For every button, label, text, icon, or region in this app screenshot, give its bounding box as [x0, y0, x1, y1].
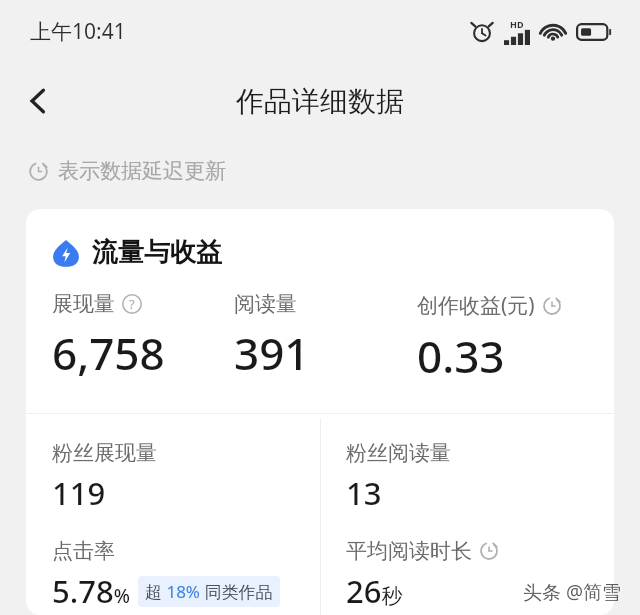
staticText: 391 — [234, 323, 310, 383]
staticText: 展现量 — [52, 291, 115, 317]
staticText: 13 — [346, 472, 382, 514]
staticText: 粉丝展现量 — [52, 440, 157, 466]
staticText: 表示数据延迟更新 — [58, 158, 226, 184]
staticText: 粉丝阅读量 — [346, 440, 451, 466]
staticText: 创作收益(元) — [417, 291, 535, 320]
staticText: 超 18% 同类作品 — [145, 580, 273, 603]
staticText: 119 — [52, 472, 106, 514]
staticText: 阅读量 — [234, 291, 297, 317]
staticText: 0.33 — [417, 326, 505, 386]
staticText: 6,758 — [52, 323, 165, 383]
staticText: 头条 @简雪 — [523, 579, 622, 605]
button[interactable]: 流量与收益 — [26, 209, 614, 615]
staticText: 26秒 — [346, 570, 403, 612]
staticText: 点击率 — [52, 538, 115, 564]
staticText: 平均阅读时长 — [346, 538, 472, 564]
staticText: 5.78% — [52, 570, 130, 612]
staticText: HD — [510, 18, 524, 30]
staticText: ? — [129, 295, 135, 313]
staticText: 作品详细数据 — [236, 84, 404, 119]
button[interactable]: Back — [10, 73, 66, 129]
staticText: 上午10:41 — [30, 17, 126, 46]
staticText: 流量与收益 — [92, 236, 222, 269]
